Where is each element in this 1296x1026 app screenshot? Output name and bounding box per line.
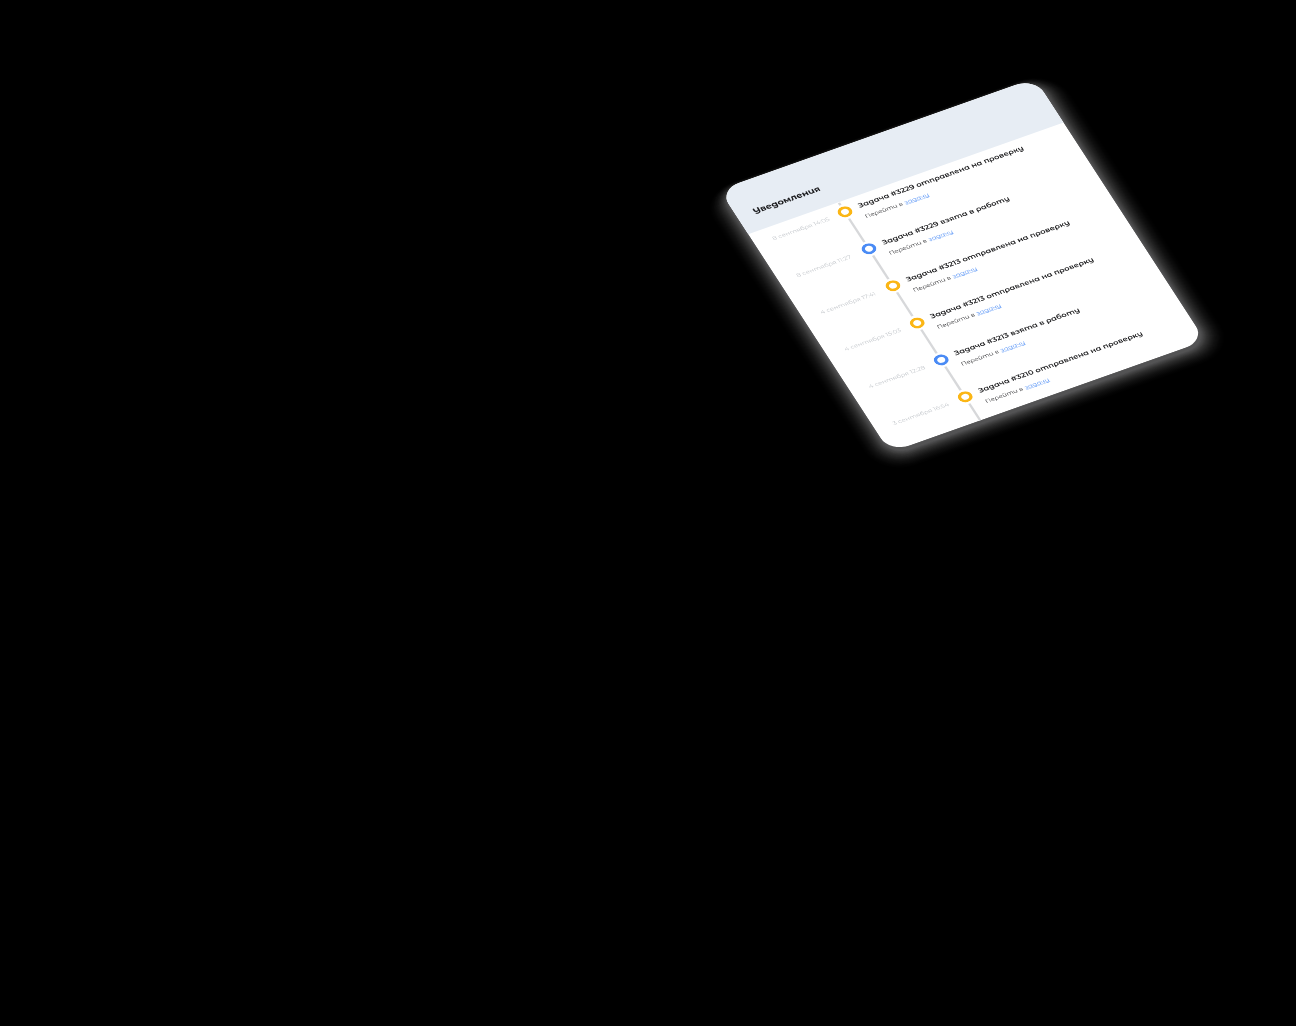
button[interactable]: Перейти в xyxy=(887,228,955,256)
button[interactable]: Задача #3213 взята в работу xyxy=(952,306,1082,357)
button[interactable]: Перейти в xyxy=(984,376,1051,405)
staticText: задачу xyxy=(951,265,979,279)
staticText: задачу xyxy=(1023,376,1051,391)
staticText: Задача #3229 отправлена на проверку xyxy=(856,144,1025,209)
staticText: задачу xyxy=(903,191,931,206)
button[interactable]: Перейти в xyxy=(863,191,931,220)
staticText: 8 сентября 11:27 xyxy=(795,254,853,279)
staticText: задачу xyxy=(927,228,955,243)
staticText: Перейти в xyxy=(887,237,930,256)
other: Отправлена xyxy=(907,316,927,330)
staticText: 4 сентября 12:28 xyxy=(867,364,927,390)
button[interactable]: Задача #3229 отправлена на проверку xyxy=(856,144,1025,209)
staticText: Задача #3213 взята в работу xyxy=(952,306,1082,357)
other: В работе xyxy=(859,241,879,256)
staticText: Перейти в xyxy=(984,385,1027,404)
staticText: 8 сентября 14:05 xyxy=(771,216,831,242)
other: В работе xyxy=(931,352,951,367)
staticText: 3 сентября 16:54 xyxy=(891,401,951,427)
other: Отправлена xyxy=(883,278,903,293)
staticText: задачу xyxy=(999,339,1027,353)
button[interactable]: Уведомления xyxy=(719,78,1064,234)
staticText: 4 сентября 17:41 xyxy=(819,290,878,315)
staticText: Задача #3210 отправлена на проверку xyxy=(976,330,1144,394)
staticText: Задача #3229 взята в работу xyxy=(880,194,1012,246)
button[interactable]: Перейти в xyxy=(935,302,1003,330)
other: Отправлена xyxy=(955,389,975,404)
staticText: Перейти в xyxy=(935,311,978,330)
button[interactable]: Перейти в xyxy=(911,265,979,293)
button[interactable]: Задача #3210 отправлена на проверку xyxy=(976,330,1144,394)
button[interactable]: Задача #3213 отправлена на проверку xyxy=(904,219,1072,283)
staticText: Перейти в xyxy=(959,348,1002,367)
staticText: Задача #3213 отправлена на проверку xyxy=(928,256,1096,320)
staticText: задачу xyxy=(975,302,1003,316)
button[interactable]: Задача #3229 взята в работу xyxy=(880,194,1012,246)
staticText: 4 сентября 15:03 xyxy=(843,327,903,352)
staticText: Задача #3213 отправлена на проверку xyxy=(904,219,1072,283)
staticText: Уведомления xyxy=(751,184,823,215)
staticText: Перейти в xyxy=(911,274,954,293)
staticText: Перейти в xyxy=(863,200,906,219)
button[interactable]: Задача #3213 отправлена на проверку xyxy=(928,256,1096,320)
other: Отправлена xyxy=(835,204,855,219)
button[interactable]: Перейти в xyxy=(959,339,1027,367)
